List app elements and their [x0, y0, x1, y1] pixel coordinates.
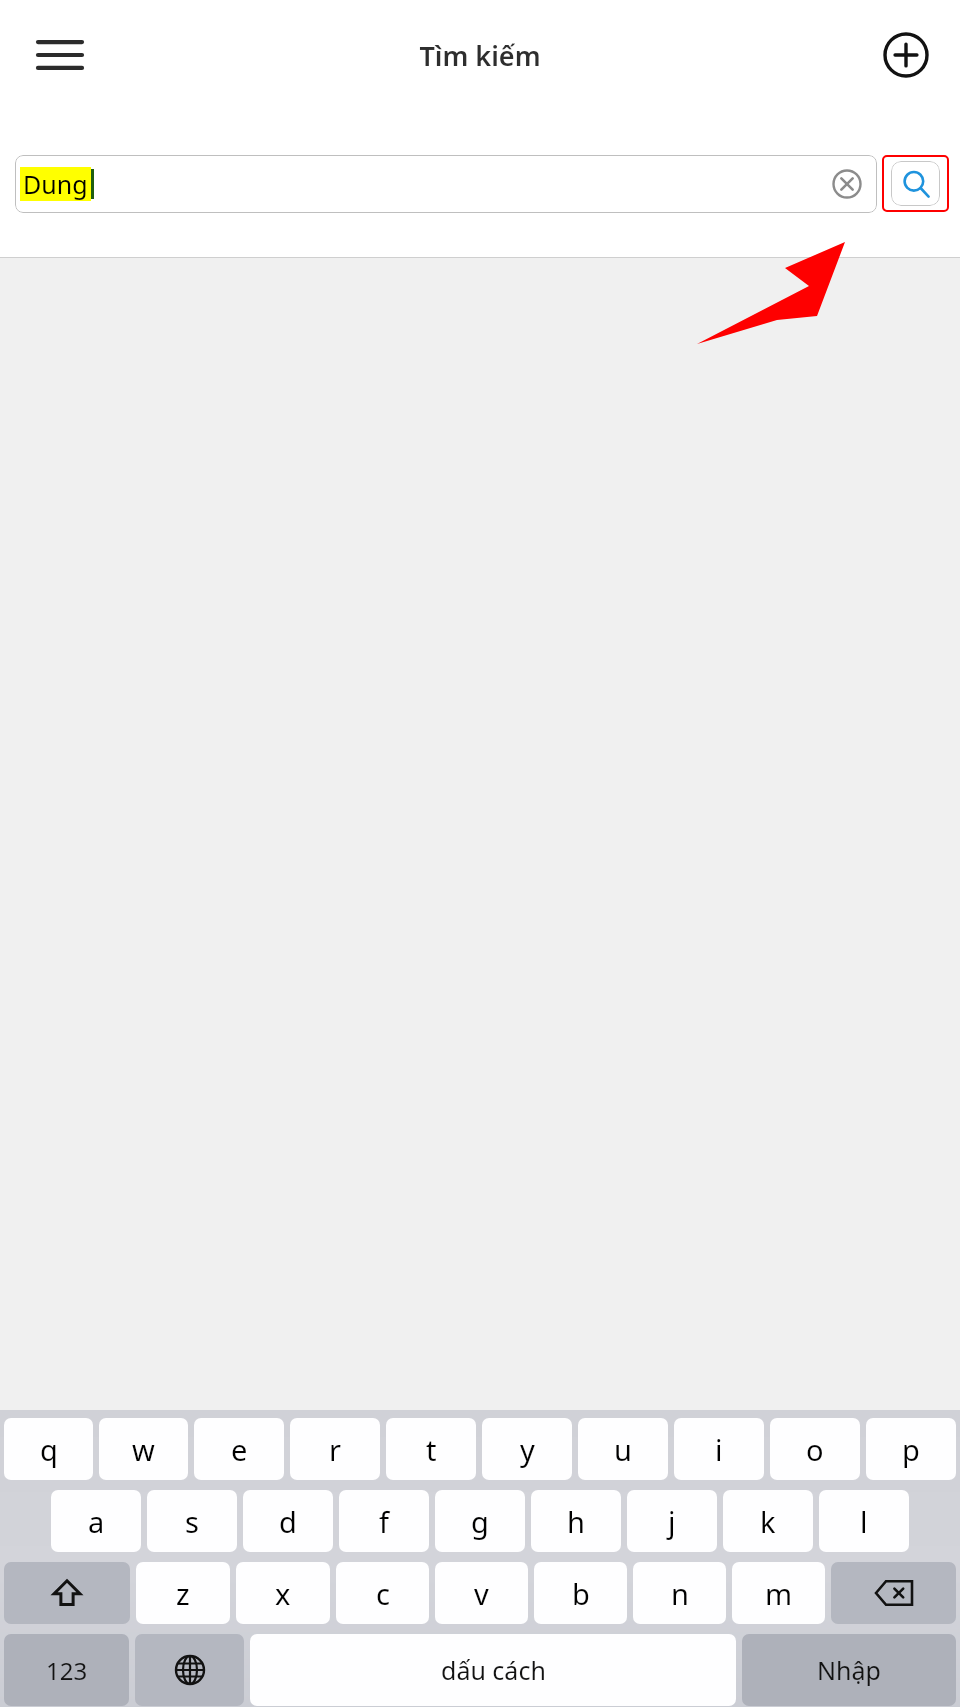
button[interactable]: p [866, 1418, 956, 1480]
button[interactable]: m [732, 1562, 825, 1624]
staticText: h [567, 1502, 585, 1541]
staticText: Tìm kiếm [419, 37, 541, 74]
button[interactable]: k [723, 1490, 813, 1552]
staticText: o [806, 1430, 824, 1469]
button[interactable]: b [534, 1562, 627, 1624]
staticText: b [572, 1574, 590, 1613]
button[interactable]: Menu [28, 23, 92, 87]
staticText: u [614, 1430, 632, 1469]
button[interactable]: o [770, 1418, 860, 1480]
staticText: 123 [46, 1654, 88, 1687]
button[interactable]: Dung [15, 155, 877, 213]
staticText: q [40, 1430, 58, 1469]
staticText: z [176, 1574, 190, 1613]
staticText: c [376, 1574, 390, 1613]
staticText: m [765, 1574, 793, 1613]
button[interactable]: c [336, 1562, 429, 1624]
button[interactable]: v [435, 1562, 528, 1624]
staticText: a [88, 1502, 105, 1541]
button[interactable]: Change keyboard [135, 1634, 244, 1706]
button[interactable]: a [51, 1490, 141, 1552]
button[interactable]: i [674, 1418, 764, 1480]
staticText: v [474, 1574, 489, 1613]
staticText: i [715, 1430, 723, 1469]
button[interactable]: t [386, 1418, 476, 1480]
staticText: y [520, 1430, 535, 1469]
staticText: r [329, 1430, 341, 1469]
button[interactable]: j [627, 1490, 717, 1552]
staticText: n [671, 1574, 689, 1613]
button[interactable]: q [4, 1418, 93, 1480]
staticText: dấu cách [441, 1653, 546, 1687]
button[interactable]: dấu cách [250, 1634, 736, 1706]
staticText: p [902, 1430, 920, 1469]
button[interactable]: y [482, 1418, 572, 1480]
button[interactable]: f [339, 1490, 429, 1552]
button[interactable]: Nhập [742, 1634, 956, 1706]
button[interactable]: d [243, 1490, 333, 1552]
button[interactable]: n [633, 1562, 726, 1624]
button[interactable]: Shift [4, 1562, 130, 1624]
button[interactable]: e [194, 1418, 284, 1480]
button[interactable]: u [578, 1418, 668, 1480]
button[interactable]: Backspace [831, 1562, 956, 1624]
staticText: s [185, 1502, 199, 1541]
button[interactable]: x [236, 1562, 330, 1624]
button[interactable]: s [147, 1490, 237, 1552]
button[interactable]: r [290, 1418, 380, 1480]
staticText: e [231, 1430, 248, 1469]
button[interactable]: l [819, 1490, 909, 1552]
staticText: d [279, 1502, 297, 1541]
staticText: x [275, 1574, 291, 1613]
staticText: j [668, 1502, 676, 1541]
staticText: k [760, 1502, 776, 1541]
button[interactable]: z [136, 1562, 230, 1624]
staticText: g [471, 1502, 489, 1541]
button[interactable]: h [531, 1490, 621, 1552]
button[interactable]: Clear text [825, 162, 869, 206]
staticText: t [426, 1430, 437, 1469]
button[interactable]: Add [876, 25, 936, 85]
button[interactable]: 123 [4, 1634, 129, 1706]
staticText: w [132, 1430, 155, 1469]
button[interactable]: w [99, 1418, 188, 1480]
staticText: l [860, 1502, 868, 1541]
staticText: Dung [23, 167, 88, 201]
staticText: f [379, 1502, 389, 1541]
button[interactable]: g [435, 1490, 525, 1552]
staticText: Nhập [817, 1653, 881, 1687]
button[interactable]: Search [891, 161, 940, 206]
